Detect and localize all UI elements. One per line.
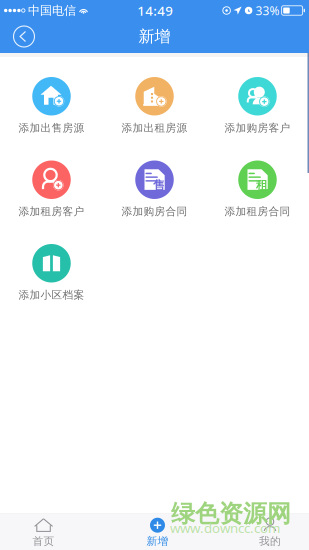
- staticText: 添加购房客户: [224, 121, 290, 135]
- button[interactable]: 添加小区档案: [0, 244, 103, 327]
- button[interactable]: 新增: [129, 515, 185, 550]
- button[interactable]: 添加出售房源: [0, 77, 103, 160]
- staticText: 添加租房客户: [18, 205, 84, 218]
- staticText: 首页: [32, 535, 54, 548]
- staticText: 租: [256, 178, 268, 192]
- button[interactable]: 返回: [0, 21, 39, 51]
- staticText: 中国电信: [28, 3, 76, 18]
- button[interactable]: 首页: [15, 515, 71, 550]
- staticText: www.downcc.com: [170, 519, 280, 537]
- button[interactable]: 添加出租房源: [103, 77, 206, 160]
- staticText: 售: [153, 178, 165, 192]
- staticText: 添加出租房源: [121, 121, 187, 135]
- button[interactable]: 售: [103, 160, 206, 244]
- button[interactable]: 我的: [242, 515, 298, 550]
- staticText: 新增: [146, 535, 168, 548]
- staticText: 绿色资源网: [171, 499, 291, 528]
- button[interactable]: 添加租房客户: [0, 160, 103, 244]
- staticText: 添加租房合同: [224, 205, 290, 218]
- button[interactable]: 添加购房客户: [206, 77, 309, 160]
- staticText: 添加购房合同: [121, 205, 187, 218]
- staticText: 添加小区档案: [18, 288, 84, 302]
- staticText: 14:49: [137, 2, 173, 19]
- button[interactable]: 租: [206, 160, 309, 244]
- staticText: 添加出售房源: [18, 121, 84, 135]
- staticText: 新增: [138, 27, 170, 46]
- staticText: 33%: [256, 2, 280, 18]
- staticText: 我的: [259, 535, 281, 548]
